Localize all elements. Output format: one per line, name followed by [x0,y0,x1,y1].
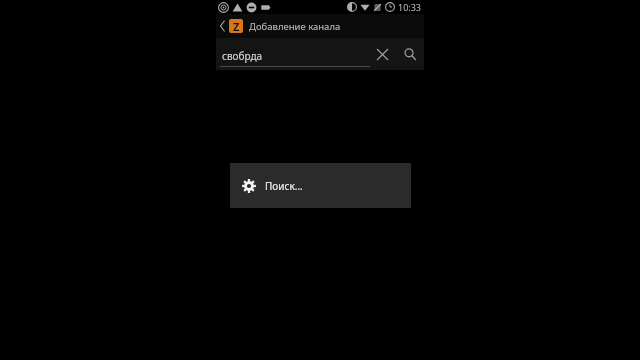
button[interactable]: Search [398,38,422,70]
staticText: Поиск… [265,179,303,193]
staticText: 10:33 [398,1,422,13]
staticText: Добавление канала [249,20,341,33]
button[interactable]: Clear search [370,38,394,70]
button[interactable]: свобрда [220,38,370,70]
staticText: Z [233,19,240,33]
staticText: свобрда [222,49,263,63]
button[interactable]: Back [216,14,229,38]
button[interactable]: Поиск… [230,163,411,208]
